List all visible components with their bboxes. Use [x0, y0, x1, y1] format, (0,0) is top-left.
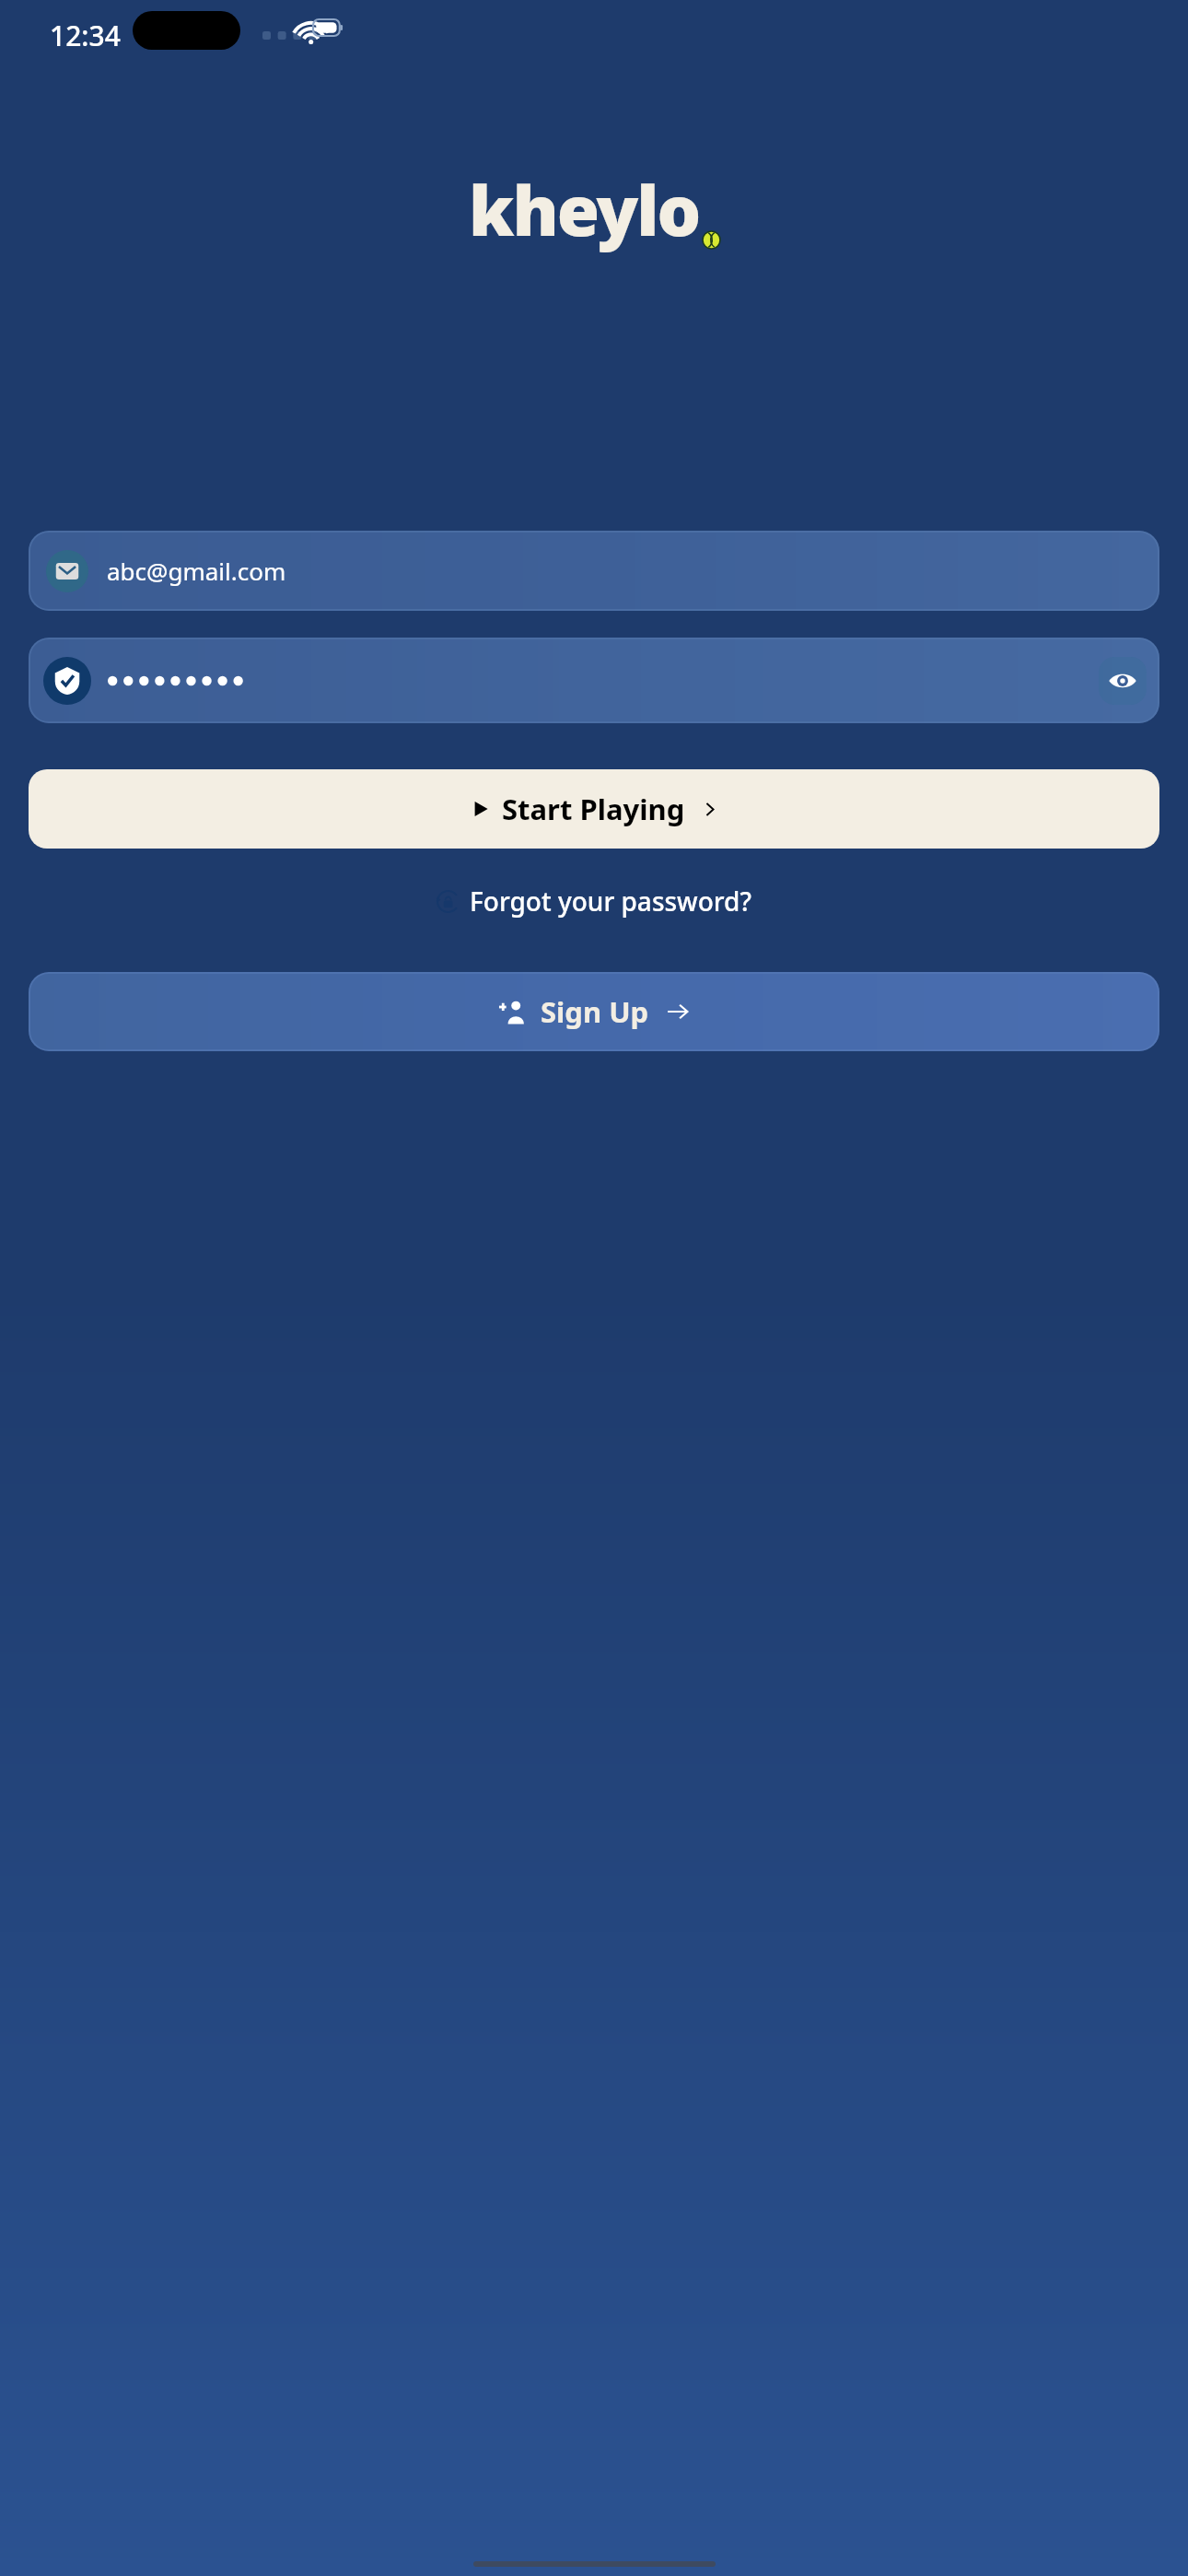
button[interactable]: Show password — [1099, 657, 1147, 705]
button[interactable]: Sign Up — [29, 972, 1159, 1051]
staticText: kheylo — [469, 162, 700, 256]
staticText: Start Playing — [502, 790, 685, 828]
staticText: abc@gmail.com — [107, 555, 286, 587]
button[interactable]: abc@gmail.com — [29, 531, 1159, 611]
button[interactable]: Start Playing — [29, 769, 1159, 849]
staticText: Sign Up — [541, 992, 649, 1031]
button[interactable]: Forgot your password? — [429, 878, 759, 924]
staticText: Forgot your password? — [470, 884, 751, 919]
button[interactable]: Show password — [29, 638, 1159, 723]
staticText: 12:34 — [50, 17, 121, 54]
